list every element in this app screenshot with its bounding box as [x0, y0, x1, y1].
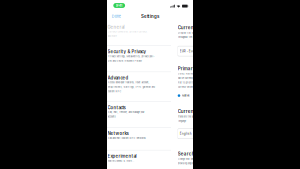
staticText: EUR - Euro: [180, 49, 196, 53]
staticText: Access developer features, reset account…: [108, 81, 150, 84]
staticText: Current Language: [178, 109, 221, 114]
staticText: native currency values or: [178, 77, 203, 80]
staticText: language: [178, 119, 186, 122]
button[interactable]: Contacts: [107, 102, 171, 127]
staticText: English: [180, 132, 192, 135]
staticText: browsing engine: [178, 162, 194, 165]
staticText: Search Engine: [178, 151, 212, 156]
staticText: Native: [182, 94, 190, 97]
staticText: Currency conversion, primary currency,: [108, 30, 148, 33]
staticText: accounts: [108, 115, 116, 118]
staticText: and more: [108, 35, 117, 38]
staticText: Settings: [141, 14, 159, 19]
staticText: Display fiat values: [178, 31, 198, 34]
staticText: Primary Currency: [178, 66, 219, 71]
button[interactable]: Advanced: [107, 72, 171, 101]
staticText: currency values: [178, 85, 193, 88]
staticText: General: [108, 24, 125, 30]
staticText: cies and Secret Recovery Phrase: [108, 59, 142, 62]
staticText: Currency Conversion: [178, 25, 227, 30]
staticText: setup testnets, state logs, IPFS gateway…: [108, 85, 155, 88]
staticText: Fiat to prioritize fiat: [178, 81, 201, 84]
staticText: Experimental: [108, 154, 137, 159]
button[interactable]: Experimental: [107, 150, 171, 169]
staticText: Networks: [108, 131, 129, 136]
staticText: Contacts: [108, 105, 126, 110]
staticText: Select Native to prioritize: [178, 72, 207, 75]
staticText: WalletConnect & more...: [108, 159, 135, 162]
staticText: Translate the app into a: [178, 115, 202, 118]
button[interactable]: Networks: [107, 128, 171, 150]
button[interactable]: English: [178, 129, 238, 139]
staticText: Add and edit custom RPC networks: [108, 137, 146, 140]
staticText: Advanced: [108, 75, 129, 80]
button[interactable]: Done: [107, 12, 126, 21]
staticText: custom RPC: [108, 90, 122, 93]
staticText: Done: [112, 14, 121, 19]
button[interactable]: Security & Privacy: [107, 46, 171, 72]
staticText: Privacy settings, MetaMetrics, privacy p…: [108, 55, 155, 58]
staticText: Security & Privacy: [108, 49, 147, 54]
staticText: throughout the app: [178, 36, 196, 39]
button[interactable]: General: [107, 22, 171, 45]
staticText: 9:41: [116, 3, 123, 8]
staticText: Change your default: [178, 157, 198, 160]
button[interactable]: EUR - Euro: [178, 46, 238, 56]
staticText: Add, edit, remove, and manage your: [108, 111, 145, 114]
